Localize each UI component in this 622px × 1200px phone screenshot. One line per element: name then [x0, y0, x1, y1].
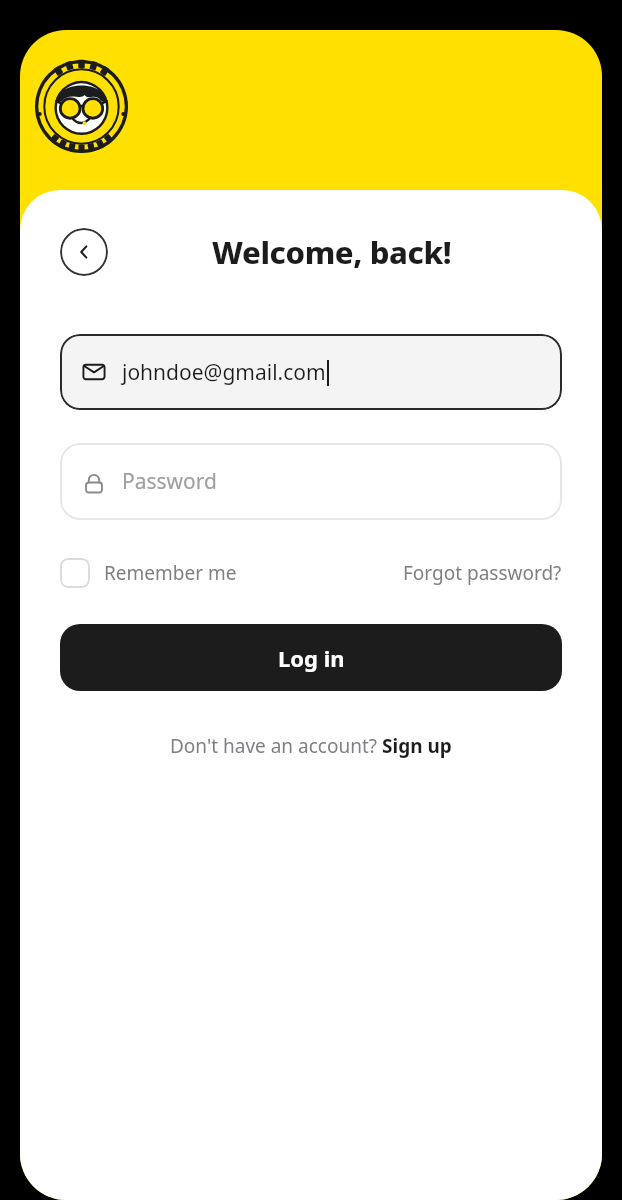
- staticText: Welcome, back!: [212, 231, 452, 273]
- staticText: Remember me: [104, 560, 237, 586]
- staticText: Sign up: [382, 733, 452, 759]
- staticText: Don't have an account?: [170, 733, 382, 759]
- staticText: Forgot password?: [403, 560, 562, 586]
- staticText: johndoe@gmail.com: [122, 358, 326, 387]
- button[interactable]: Log in: [60, 624, 562, 691]
- staticText: Log in: [278, 643, 345, 673]
- button[interactable]: Password: [60, 443, 562, 520]
- button[interactable]: Remember me: [60, 558, 237, 588]
- button[interactable]: Back: [60, 228, 108, 276]
- other: Nerdy Invoice logo: [35, 60, 128, 153]
- button[interactable]: Forgot password?: [403, 560, 562, 586]
- button[interactable]: johndoe@gmail.com: [60, 334, 562, 410]
- button[interactable]: Sign up: [382, 733, 452, 759]
- staticText: Password: [122, 467, 217, 496]
